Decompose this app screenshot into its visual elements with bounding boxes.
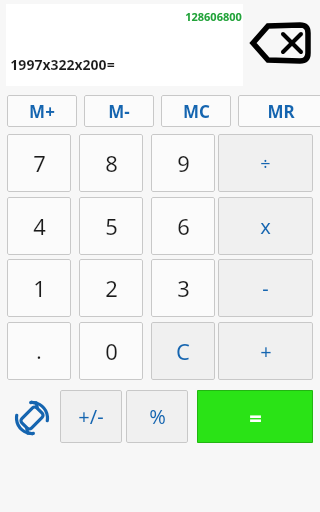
staticText: 9 bbox=[177, 148, 190, 178]
button[interactable]: C bbox=[151, 322, 215, 380]
staticText: 6 bbox=[177, 211, 190, 241]
staticText: x bbox=[260, 213, 271, 240]
staticText: 4 bbox=[33, 211, 46, 241]
staticText: +/- bbox=[78, 403, 104, 430]
staticText: C bbox=[176, 336, 190, 366]
button[interactable]: - bbox=[218, 259, 313, 317]
button[interactable]: . bbox=[7, 322, 71, 380]
staticText: 1 bbox=[33, 273, 46, 303]
staticText: - bbox=[262, 275, 269, 302]
staticText: 0 bbox=[105, 336, 118, 366]
staticText: 2 bbox=[105, 273, 118, 303]
button[interactable]: 0 bbox=[79, 322, 143, 380]
staticText: 128606800 bbox=[185, 9, 242, 24]
button[interactable]: 7 bbox=[7, 134, 71, 192]
button[interactable]: 3 bbox=[151, 259, 215, 317]
button[interactable]: 2 bbox=[79, 259, 143, 317]
staticText: % bbox=[149, 403, 166, 430]
button[interactable]: + bbox=[218, 322, 313, 380]
button[interactable]: ÷ bbox=[218, 134, 313, 192]
staticText: 1997x322x200= bbox=[10, 55, 115, 74]
button[interactable]: MR bbox=[238, 95, 320, 127]
button[interactable]: 5 bbox=[79, 197, 143, 255]
staticText: MR bbox=[267, 100, 295, 123]
staticText: ÷ bbox=[260, 151, 271, 176]
button[interactable]: +/- bbox=[60, 390, 122, 443]
button[interactable]: = bbox=[197, 390, 313, 443]
staticText: . bbox=[36, 338, 42, 365]
staticText: 8 bbox=[105, 148, 118, 178]
button[interactable]: Rotate screen bbox=[8, 393, 56, 443]
staticText: 5 bbox=[105, 211, 118, 241]
staticText: 3 bbox=[177, 273, 190, 303]
button[interactable]: MC bbox=[161, 95, 231, 127]
staticText: M- bbox=[108, 100, 130, 123]
button[interactable]: M+ bbox=[7, 95, 77, 127]
button[interactable]: x bbox=[218, 197, 313, 255]
button[interactable]: Backspace bbox=[250, 18, 312, 68]
button[interactable]: 8 bbox=[79, 134, 143, 192]
staticText: + bbox=[260, 338, 272, 365]
button[interactable]: % bbox=[126, 390, 188, 443]
staticText: = bbox=[249, 402, 262, 432]
button[interactable]: 9 bbox=[151, 134, 215, 192]
button[interactable]: 1 bbox=[7, 259, 71, 317]
staticText: 7 bbox=[33, 148, 46, 178]
button[interactable]: 6 bbox=[151, 197, 215, 255]
button[interactable]: M- bbox=[84, 95, 154, 127]
staticText: M+ bbox=[29, 100, 55, 123]
staticText: MC bbox=[183, 100, 210, 123]
button[interactable]: 4 bbox=[7, 197, 71, 255]
